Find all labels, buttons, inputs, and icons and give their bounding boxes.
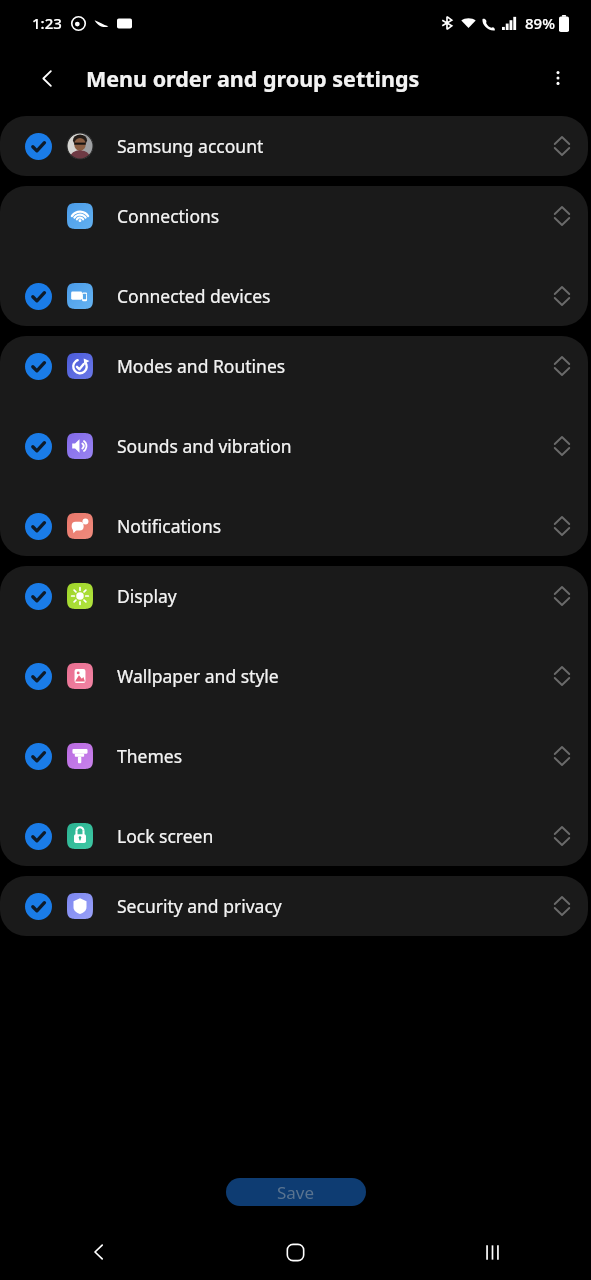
button[interactable]: Reorder item bbox=[540, 126, 584, 166]
button[interactable]: Wallpaper and style bbox=[0, 656, 588, 696]
button[interactable]: Themes bbox=[0, 736, 588, 776]
button[interactable]: Save bbox=[226, 1178, 366, 1206]
button[interactable]: Reorder item bbox=[540, 656, 584, 696]
staticText: Samsung account bbox=[117, 134, 264, 158]
button[interactable]: Reorder item bbox=[540, 736, 584, 776]
button[interactable]: Navigate up bbox=[24, 55, 70, 101]
button[interactable]: Notifications bbox=[0, 506, 588, 546]
staticText: Wallpaper and style bbox=[117, 664, 279, 688]
button[interactable]: Reorder item bbox=[540, 816, 584, 856]
button[interactable]: Sounds and vibration bbox=[0, 426, 588, 466]
staticText: Themes bbox=[117, 744, 183, 768]
button[interactable]: Recent apps bbox=[394, 1224, 591, 1280]
button[interactable]: Connections bbox=[0, 196, 588, 236]
button[interactable]: Back bbox=[0, 1224, 197, 1280]
staticText: Modes and Routines bbox=[117, 354, 286, 378]
staticText: Connected devices bbox=[117, 284, 271, 308]
staticText: Security and privacy bbox=[117, 894, 282, 918]
button[interactable]: Connected devices bbox=[0, 276, 588, 316]
button[interactable]: Reorder item bbox=[540, 506, 584, 546]
button[interactable]: Display bbox=[0, 576, 588, 616]
staticText: Sounds and vibration bbox=[117, 434, 292, 458]
button[interactable]: More options bbox=[535, 55, 581, 101]
staticText: Notifications bbox=[117, 514, 222, 538]
staticText: Connections bbox=[117, 204, 220, 228]
button[interactable]: Reorder item bbox=[540, 576, 584, 616]
button[interactable]: Home bbox=[197, 1224, 394, 1280]
button[interactable]: Lock screen bbox=[0, 816, 588, 856]
button[interactable]: Reorder item bbox=[540, 426, 584, 466]
staticText: 89% bbox=[525, 13, 555, 33]
button[interactable]: Reorder item bbox=[540, 346, 584, 386]
button[interactable]: Reorder item bbox=[540, 276, 584, 316]
button[interactable]: Samsung account bbox=[0, 126, 588, 166]
button[interactable]: Reorder item bbox=[540, 196, 584, 236]
button[interactable]: Reorder item bbox=[540, 886, 584, 926]
button[interactable]: Security and privacy bbox=[0, 886, 588, 926]
staticText: Display bbox=[117, 584, 177, 608]
staticText: Save bbox=[277, 1181, 315, 1204]
staticText: Lock screen bbox=[117, 824, 214, 848]
staticText: Menu order and group settings bbox=[86, 64, 535, 93]
button[interactable]: Modes and Routines bbox=[0, 346, 588, 386]
staticText: 1:23 bbox=[32, 13, 62, 33]
